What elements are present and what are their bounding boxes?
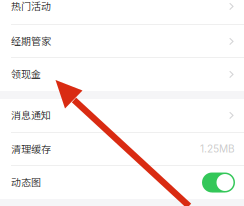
staticText: 经期管家 xyxy=(11,33,51,48)
button[interactable]: 消息通知 xyxy=(0,99,244,132)
staticText: 领现金 xyxy=(11,66,41,81)
button[interactable]: 清理缓存 xyxy=(0,133,244,165)
button[interactable]: 热门活动 xyxy=(0,0,244,24)
button[interactable]: 经期管家 xyxy=(0,25,244,57)
staticText: 动态图 xyxy=(11,174,41,189)
button[interactable]: 领现金 xyxy=(0,58,244,91)
staticText: 消息通知 xyxy=(11,107,51,122)
staticText: 清理缓存 xyxy=(11,141,51,156)
button[interactable]: 动态图 xyxy=(0,166,244,199)
staticText: 1.25MB xyxy=(200,143,235,155)
staticText: 热门活动 xyxy=(11,0,51,13)
